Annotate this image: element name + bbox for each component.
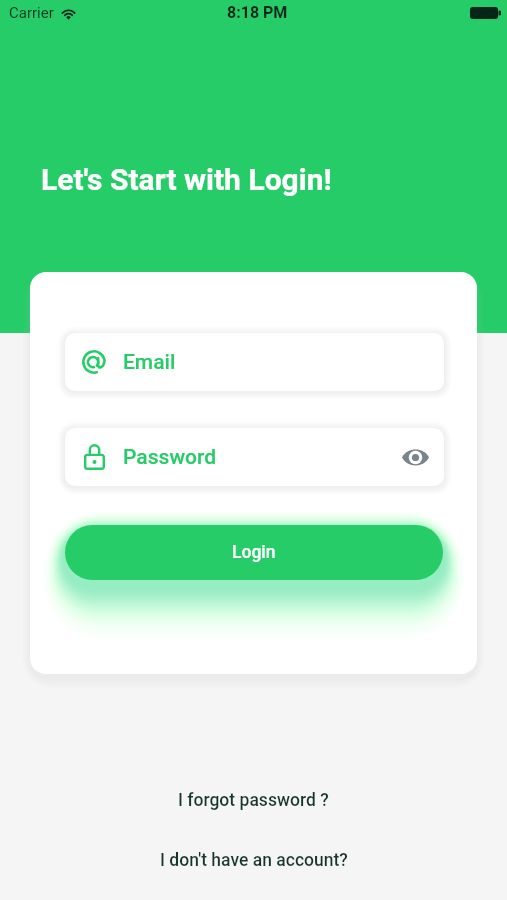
button[interactable]: I forgot password ? <box>0 782 507 818</box>
staticText: 8:18 PM <box>227 3 288 22</box>
other: Show password <box>402 448 429 467</box>
button[interactable]: Password <box>65 428 444 486</box>
staticText: Login <box>232 542 276 563</box>
staticText: Password <box>123 445 217 470</box>
staticText: Email <box>123 350 176 375</box>
staticText: Let's Start with Login! <box>41 162 332 197</box>
button[interactable]: I don't have an account? <box>0 842 507 878</box>
staticText: I forgot password ? <box>178 790 329 811</box>
staticText: Carrier <box>9 4 54 22</box>
button[interactable]: Login <box>65 525 443 580</box>
staticText: I don't have an account? <box>160 850 348 871</box>
button[interactable]: Email <box>65 333 444 391</box>
